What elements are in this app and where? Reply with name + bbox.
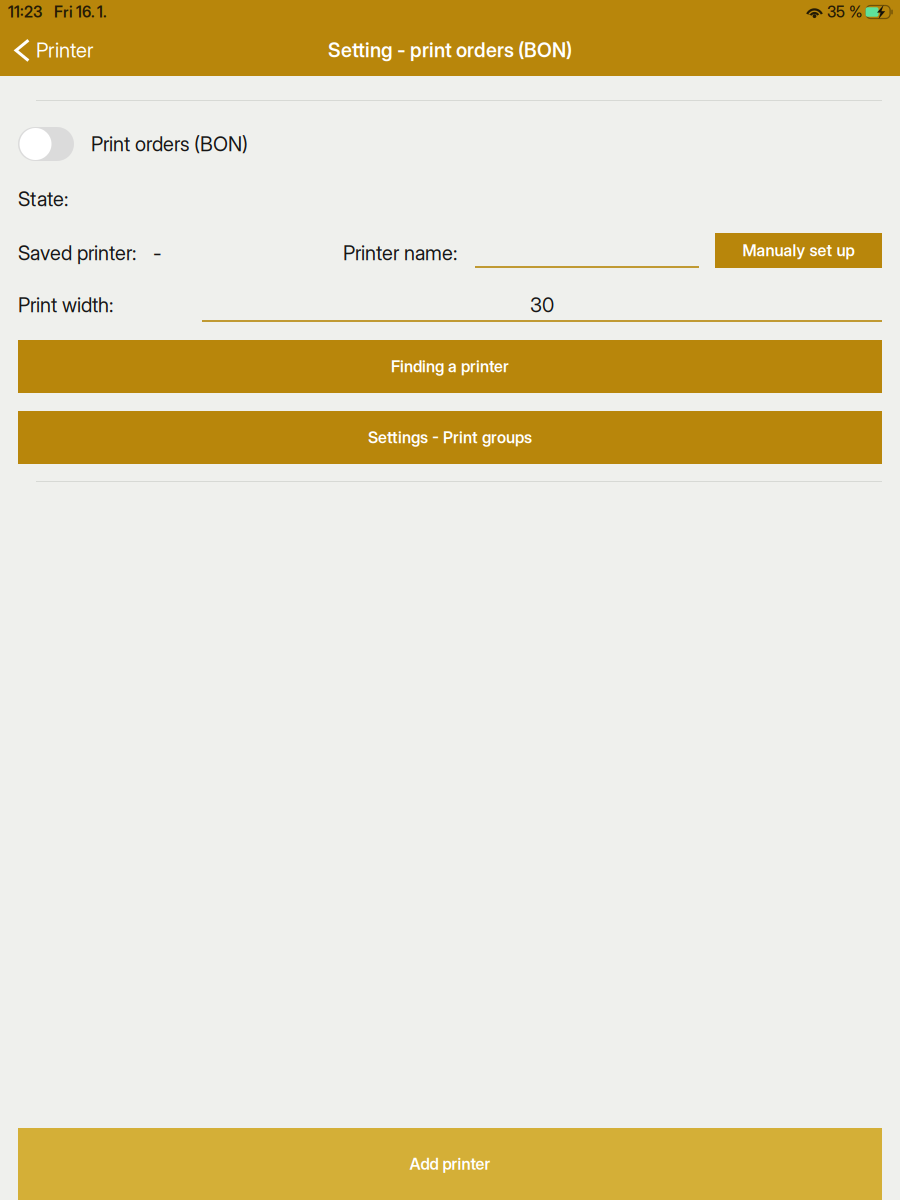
staticText: Print orders (BON) <box>91 132 248 156</box>
button[interactable]: Add printer <box>18 1128 882 1200</box>
staticText: Print width: <box>18 293 113 317</box>
staticText: 11:23 <box>8 3 42 21</box>
staticText: Printer <box>36 38 94 62</box>
staticText: Manualy set up <box>742 241 854 260</box>
button[interactable]: 30 <box>202 288 882 322</box>
staticText: Finding a printer <box>391 357 509 376</box>
staticText: Settings - Print groups <box>368 428 532 447</box>
button[interactable]: Back to Printer <box>0 24 106 76</box>
staticText: Fri 16. 1. <box>54 3 107 21</box>
staticText: Saved printer: <box>18 241 136 265</box>
button[interactable]: Print orders (BON), off <box>18 127 74 161</box>
staticText: - <box>153 241 162 265</box>
staticText: 35 % <box>827 3 862 21</box>
staticText: Setting - print orders (BON) <box>328 38 572 62</box>
staticText: Printer name: <box>343 241 457 265</box>
button[interactable]: Settings - Print groups <box>18 411 882 464</box>
staticText: State: <box>18 187 68 211</box>
staticText: Add printer <box>409 1154 490 1174</box>
button[interactable]: Printer name, text field <box>475 233 699 268</box>
button[interactable]: Manualy set up <box>715 233 882 268</box>
button[interactable]: Finding a printer <box>18 340 882 393</box>
staticText: 30 <box>530 293 554 317</box>
